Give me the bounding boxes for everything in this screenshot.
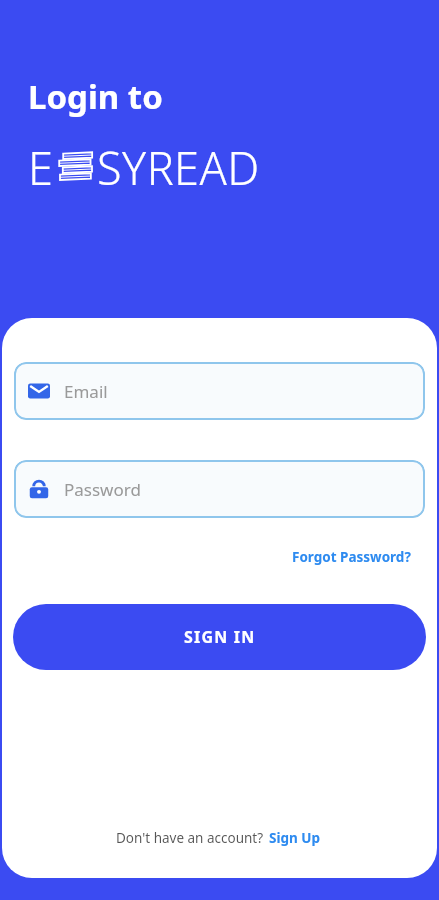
button[interactable]: Sign Up xyxy=(267,826,323,850)
staticText: Email xyxy=(64,380,108,403)
button[interactable]: SIGN IN xyxy=(13,604,426,670)
button[interactable]: Email xyxy=(14,362,425,420)
button[interactable]: Forgot Password? xyxy=(288,544,415,570)
staticText: E xyxy=(28,137,54,198)
staticText: SIGN IN xyxy=(184,626,256,648)
button[interactable]: Password xyxy=(14,460,425,518)
staticText: Don't have an account? xyxy=(116,829,267,847)
staticText: Login to xyxy=(28,74,163,119)
staticText: Forgot Password? xyxy=(292,548,411,566)
staticText: Password xyxy=(64,478,141,501)
staticText: Sign Up xyxy=(269,829,321,847)
staticText: SYREAD xyxy=(97,137,260,198)
